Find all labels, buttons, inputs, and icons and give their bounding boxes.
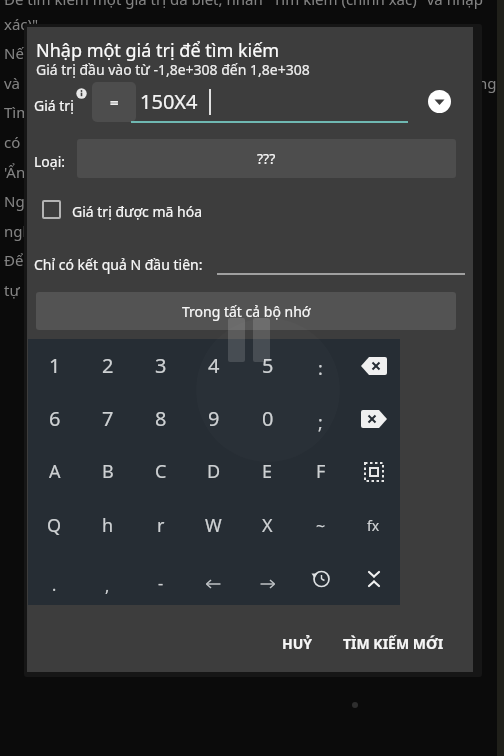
staticText: 6 xyxy=(49,405,61,432)
staticText: 4 xyxy=(208,352,220,379)
button[interactable]: 0 xyxy=(241,392,294,445)
staticText: có thể mất chút thời gian tùy thuộc kích… xyxy=(4,132,468,152)
staticText: TÌM KIẾM MỚI xyxy=(343,634,444,653)
button[interactable]: TÌM KIẾM MỚI xyxy=(331,625,456,661)
button[interactable]: E xyxy=(241,445,294,498)
staticText: D xyxy=(207,459,221,484)
staticText: 7 xyxy=(102,405,114,432)
staticText: Q xyxy=(47,513,62,538)
staticText: 2 xyxy=(102,352,114,379)
staticText: E xyxy=(262,459,273,484)
button[interactable]: X xyxy=(241,499,294,552)
button[interactable]: 8 xyxy=(134,392,187,445)
staticText: nghĩa là kết quả sẽ được hiển thị trong … xyxy=(4,221,353,241)
staticText: . xyxy=(52,574,57,596)
staticText: Nhập một giá trị để tìm kiếm xyxy=(36,38,280,63)
button[interactable]: 1 xyxy=(28,339,81,392)
staticText: ??? xyxy=(257,149,276,168)
button[interactable]: ~ xyxy=(294,499,347,552)
button[interactable]: 4 xyxy=(187,339,240,392)
staticText: và sau đó nhấn 'Làm mới' để lọc lại kết … xyxy=(4,73,497,93)
button[interactable]: : xyxy=(294,339,347,392)
staticText: 150X4 xyxy=(140,88,198,115)
button[interactable] xyxy=(187,552,240,605)
button[interactable]: , xyxy=(81,552,134,605)
button[interactable]: = xyxy=(92,82,136,122)
button[interactable] xyxy=(294,552,347,605)
staticText: Người dùng có thể chọn vùng bộ nhớ để tì… xyxy=(4,191,367,211)
staticText: X xyxy=(262,513,273,538)
staticText: Giá trị được mã hóa xyxy=(72,202,203,221)
staticText: tự động. Nhấn kết quả để thêm vào danh s… xyxy=(4,280,380,300)
staticText: 0 xyxy=(262,405,274,432)
button[interactable]: F xyxy=(294,445,347,498)
button[interactable]: ??? xyxy=(77,139,456,178)
staticText: r xyxy=(157,513,165,538)
staticText: F xyxy=(316,459,326,484)
staticText: 1 xyxy=(49,352,61,379)
button[interactable]: 2 xyxy=(81,339,134,392)
staticText: Trong tất cả bộ nhớ xyxy=(182,302,311,321)
staticText: 8 xyxy=(155,405,167,432)
staticText: : xyxy=(318,356,323,381)
staticText: xác)". xyxy=(4,14,43,34)
staticText: W xyxy=(205,513,222,538)
staticText: Giá trị đầu vào từ -1,8e+308 đến 1,8e+30… xyxy=(36,60,310,79)
staticText: 3 xyxy=(155,352,167,379)
button[interactable]: - xyxy=(134,552,187,605)
staticText: = xyxy=(110,92,119,112)
button[interactable]: 9 xyxy=(187,392,240,445)
button[interactable]: C xyxy=(134,445,187,498)
staticText: ~ xyxy=(316,515,326,537)
staticText: Loại: xyxy=(34,152,66,171)
button[interactable]: 5 xyxy=(241,339,294,392)
button[interactable] xyxy=(347,552,400,605)
staticText: 5 xyxy=(262,352,274,379)
button[interactable]: HUỶ xyxy=(263,625,331,661)
button[interactable] xyxy=(347,445,400,498)
button[interactable] xyxy=(347,392,400,445)
button[interactable]: r xyxy=(134,499,187,552)
button[interactable]: h xyxy=(81,499,134,552)
staticText: Tìm kiếm giá trị trong bộ nhớ của trò ch… xyxy=(4,102,374,122)
button[interactable] xyxy=(42,200,61,219)
staticText: h xyxy=(102,513,114,538)
button[interactable]: Trong tất cả bộ nhớ xyxy=(36,292,456,330)
staticText: , xyxy=(105,575,110,597)
staticText: B xyxy=(102,459,114,484)
staticText: Giá trị xyxy=(34,96,74,115)
button[interactable]: A xyxy=(28,445,81,498)
button[interactable] xyxy=(241,552,294,605)
staticText: A xyxy=(49,459,61,484)
staticText: Nếu giá trị đã thay đổi, hãy nhập giá tr… xyxy=(4,43,401,63)
button[interactable]: D xyxy=(187,445,240,498)
button[interactable]: B xyxy=(81,445,134,498)
button[interactable]: ; xyxy=(294,392,347,445)
button[interactable]: 6 xyxy=(28,392,81,445)
button[interactable] xyxy=(347,339,400,392)
button[interactable]: 3 xyxy=(134,339,187,392)
button[interactable]: 7 xyxy=(81,392,134,445)
button[interactable]: W xyxy=(187,499,240,552)
staticText: ; xyxy=(318,410,323,435)
button[interactable] xyxy=(428,90,451,113)
staticText: C xyxy=(155,459,167,484)
staticText: fx xyxy=(367,516,380,535)
staticText: Để tìm kiếm một giá trị đã biết, nhấn "T… xyxy=(4,0,483,9)
button[interactable]: Q xyxy=(28,499,81,552)
staticText: Chỉ có kết quả N đầu tiên: xyxy=(34,255,203,274)
button[interactable]: fx xyxy=(347,499,400,552)
staticText: - xyxy=(158,572,164,594)
button[interactable]: . xyxy=(28,552,81,605)
staticText: 9 xyxy=(208,405,220,432)
staticText: HUỶ xyxy=(282,634,313,653)
staticText: Để biết thêm chi tiết, xem trợ giúp đầy … xyxy=(4,250,372,270)
staticText: 'Ẩn' để ẩn cửa sổ này và quay lại trò ch… xyxy=(4,162,347,182)
